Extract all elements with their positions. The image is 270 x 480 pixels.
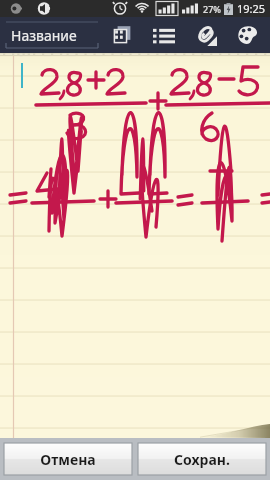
staticText: 19:25 [237, 1, 266, 16]
staticText: Название [11, 26, 77, 45]
button[interactable]: Название [6, 22, 98, 48]
staticText: 27% [203, 3, 221, 15]
staticText: Отмена [40, 450, 96, 469]
button[interactable]: Сохран. [138, 443, 266, 475]
button[interactable]: Отмена [4, 443, 132, 475]
button[interactable]: Table [106, 19, 138, 51]
button[interactable]: List [148, 19, 180, 51]
button[interactable]: Attach [190, 19, 222, 51]
staticText: Сохран. [174, 450, 230, 469]
button[interactable]: Colour [232, 19, 264, 51]
